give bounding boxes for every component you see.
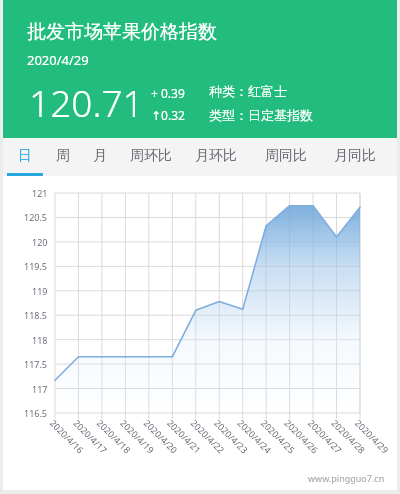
staticText: + 0.39 [151,85,185,101]
button[interactable]: 月 [82,138,118,176]
button[interactable]: 月同比 [328,138,382,176]
staticText: www.pingguo7.cn [308,472,385,484]
button[interactable]: 周同比 [259,138,313,176]
staticText: 日 [18,147,32,165]
staticText: ↑0.32 [151,107,185,123]
staticText: 月环比 [195,147,237,165]
staticText: 批发市场苹果价格指数 [27,20,217,44]
staticText: 月 [93,147,107,165]
button[interactable]: 月环比 [189,138,243,176]
button[interactable]: 周环比 [124,138,178,176]
staticText: 周同比 [265,147,307,165]
staticText: 120.71 [29,77,144,127]
staticText: 周环比 [130,147,172,165]
button[interactable]: 日 [7,138,43,176]
staticText: 类型：日定基指数 [209,107,313,123]
staticText: 种类：红富士 [209,83,287,99]
staticText: 月同比 [334,147,376,165]
staticText: 周 [56,147,70,165]
staticText: 2020/4/29 [27,51,89,69]
button[interactable]: 周 [45,138,81,176]
